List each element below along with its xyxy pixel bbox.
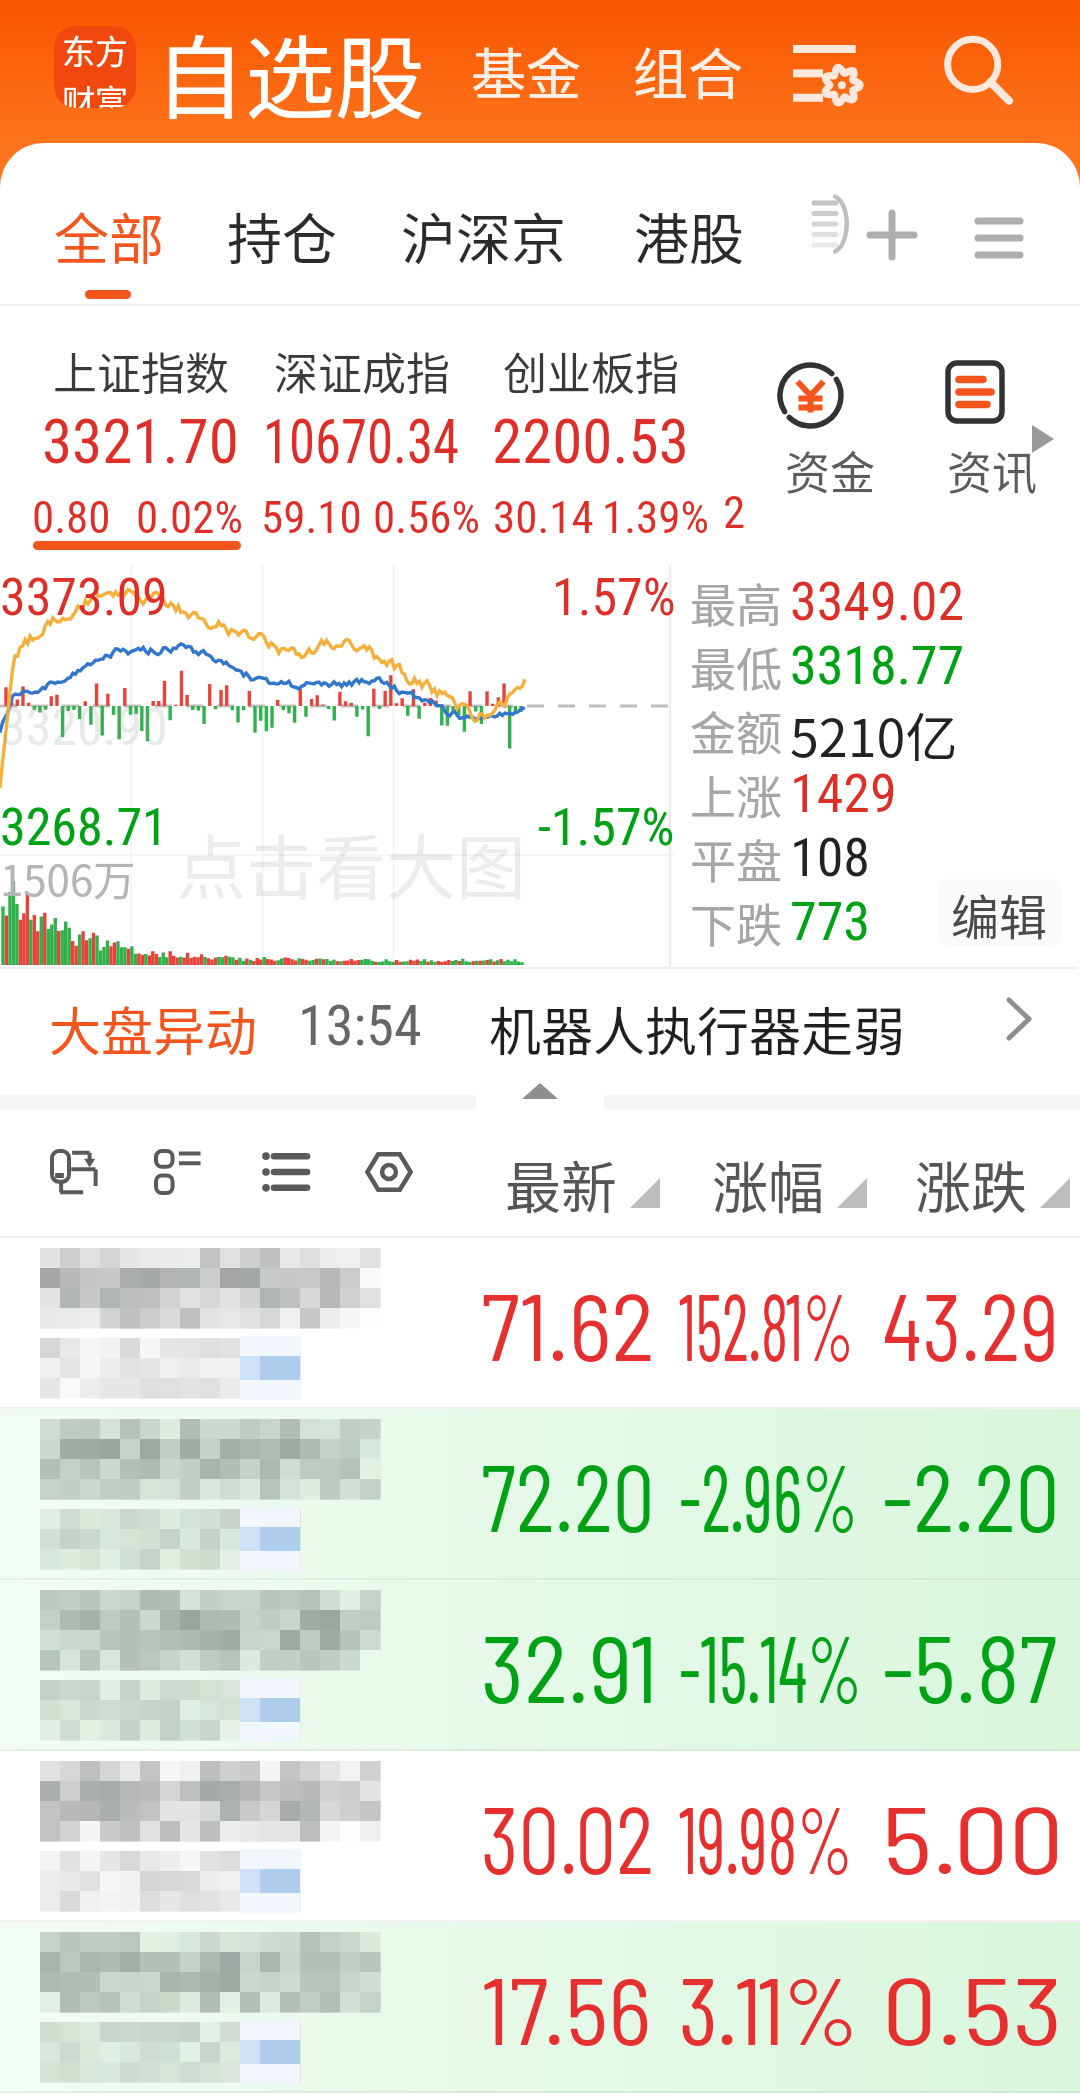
staticText: 点击看大图 xyxy=(176,813,526,914)
button[interactable]: Add xyxy=(870,213,914,257)
button[interactable]: 创业板指 xyxy=(503,339,679,403)
staticText: 资金 xyxy=(785,438,876,503)
staticText: 3320.90 xyxy=(0,697,168,758)
staticText: 金额 xyxy=(690,697,782,761)
button[interactable]: Search xyxy=(932,26,1024,118)
button[interactable]: 涨跌 xyxy=(901,1129,1080,1211)
staticText: 最低 xyxy=(690,633,782,697)
staticText: 3318.77 xyxy=(790,634,965,697)
button[interactable]: 全部 xyxy=(54,195,165,275)
staticText: 59.10 xyxy=(261,491,362,544)
staticText: 19.98% xyxy=(679,1781,853,1893)
staticText: 43.29 xyxy=(882,1268,1059,1380)
button[interactable]: 资讯 xyxy=(906,356,1052,506)
button[interactable]: Sync xyxy=(42,1140,106,1204)
staticText: 72.20 xyxy=(481,1439,654,1551)
button[interactable]: Layout xyxy=(146,1140,210,1204)
staticText: 13:54 xyxy=(298,993,422,1059)
staticText: 0.53 xyxy=(882,1952,1063,2064)
staticText: 3.11% xyxy=(679,1952,858,2064)
staticText: 平盘 xyxy=(690,825,782,889)
staticText: -5.87 xyxy=(882,1610,1058,1722)
staticText: 东方 xyxy=(62,26,128,74)
staticText: 1.57% xyxy=(552,567,676,628)
staticText: -2.96% xyxy=(679,1439,858,1551)
button[interactable]: Settings xyxy=(786,26,878,118)
staticText: 0.56% xyxy=(373,491,480,544)
button[interactable]: 最新 xyxy=(491,1129,671,1211)
staticText: 108 xyxy=(790,826,870,889)
button[interactable]: Edit tabs xyxy=(800,196,856,252)
staticText: 最新 xyxy=(505,1143,617,1224)
button[interactable]: List xyxy=(253,1140,317,1204)
button[interactable]: 深证成指 xyxy=(274,339,450,403)
staticText: 2200.53 xyxy=(492,406,689,477)
button[interactable]: 上证指数 xyxy=(53,339,229,403)
button[interactable]: 32.91 xyxy=(0,1580,1080,1751)
staticText: 3349.02 xyxy=(790,570,965,633)
staticText: 71.62 xyxy=(481,1268,655,1380)
button[interactable]: Menu xyxy=(976,215,1022,261)
button[interactable]: 沪深京 xyxy=(401,195,567,275)
button[interactable]: 72.20 xyxy=(0,1409,1080,1580)
button[interactable]: 17.56 xyxy=(0,1922,1080,2093)
staticText: 上涨 xyxy=(690,761,782,825)
button[interactable]: 持仓 xyxy=(227,195,338,275)
staticText: 1506万 xyxy=(0,847,136,908)
staticText: 机器人执行器走弱 xyxy=(489,991,906,1066)
button[interactable]: 港股 xyxy=(634,195,745,275)
staticText: 152.81% xyxy=(679,1268,854,1380)
button[interactable]: 71.62 xyxy=(0,1238,1080,1409)
staticText: 3321.70 xyxy=(42,406,239,477)
staticText: 1.39% xyxy=(602,491,709,544)
staticText: 涨跌 xyxy=(915,1143,1027,1224)
staticText: 3373.09 xyxy=(0,567,168,628)
staticText: 3268.71 xyxy=(0,797,168,858)
button[interactable]: Collapse xyxy=(476,1071,604,1111)
staticText: -2.20 xyxy=(882,1439,1060,1551)
staticText: 10670.34 xyxy=(263,406,459,477)
staticText: -1.57% xyxy=(538,797,675,858)
staticText: 最高 xyxy=(690,569,782,633)
staticText: 编辑 xyxy=(951,879,1048,946)
staticText: 资讯 xyxy=(947,438,1038,503)
button[interactable]: 大盘异动 xyxy=(0,969,1080,1095)
button[interactable]: 东方财富 xyxy=(54,26,136,108)
staticText: 下跌 xyxy=(690,889,782,953)
button[interactable]: 基金 xyxy=(471,30,582,110)
button[interactable]: 自选股 xyxy=(155,7,425,137)
staticText: 32.91 xyxy=(481,1610,658,1722)
staticText: 财富 xyxy=(62,76,128,108)
staticText: 30.02 xyxy=(481,1781,654,1893)
staticText: 大盘异动 xyxy=(49,991,258,1066)
staticText: 17.56 xyxy=(481,1952,652,2064)
staticText: 5210亿 xyxy=(790,697,958,761)
button[interactable]: Settings xyxy=(357,1140,421,1204)
staticText: -15.14% xyxy=(679,1610,862,1722)
staticText: 2 xyxy=(723,486,746,539)
button[interactable]: 编辑 xyxy=(938,879,1061,946)
staticText: 0.80 xyxy=(32,491,111,544)
staticText: 涨幅 xyxy=(712,1143,824,1224)
staticText: 0.02% xyxy=(136,491,243,544)
button[interactable]: 涨幅 xyxy=(698,1129,878,1211)
staticText: 773 xyxy=(790,890,870,953)
staticText: 30.14 xyxy=(493,491,594,544)
button[interactable]: 资金 xyxy=(744,356,890,506)
staticText: 1429 xyxy=(790,762,897,825)
button[interactable]: 组合 xyxy=(633,30,744,110)
button[interactable]: 30.02 xyxy=(0,1751,1080,1922)
staticText: 5.00 xyxy=(882,1781,1064,1893)
